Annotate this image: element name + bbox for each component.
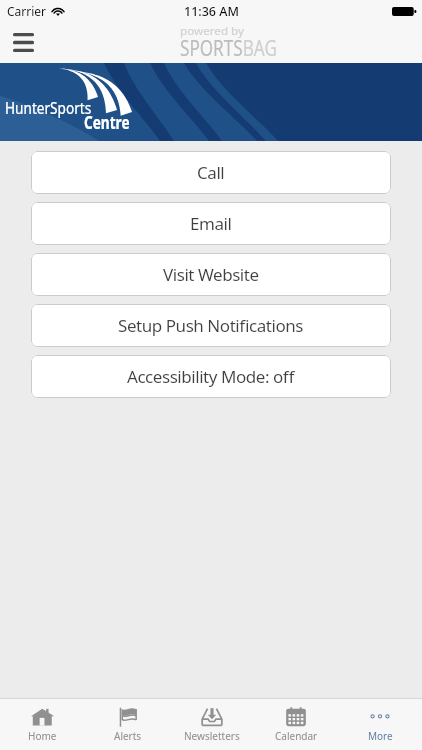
button[interactable]: Home bbox=[0, 699, 85, 750]
staticText: 11:36 AM bbox=[184, 3, 239, 20]
button[interactable]: Alerts bbox=[85, 699, 170, 750]
staticText: HunterSports bbox=[5, 96, 91, 119]
staticText: Alerts bbox=[114, 729, 142, 743]
staticText: Home bbox=[28, 729, 57, 743]
staticText: Email bbox=[190, 212, 232, 235]
staticText: Setup Push Notifications bbox=[118, 314, 304, 337]
staticText: Call bbox=[197, 161, 225, 184]
button[interactable]: Calendar bbox=[254, 699, 338, 750]
button[interactable]: Setup Push Notifications bbox=[31, 304, 391, 347]
button[interactable]: Newsletters bbox=[170, 699, 254, 750]
button[interactable]: Visit Website bbox=[31, 253, 391, 296]
staticText: Accessibility Mode: off bbox=[127, 365, 295, 388]
staticText: More bbox=[368, 729, 393, 743]
button[interactable]: More bbox=[338, 699, 422, 750]
staticText: Calendar bbox=[275, 729, 318, 743]
staticText: Centre bbox=[84, 111, 130, 134]
button[interactable]: Email bbox=[31, 202, 391, 245]
staticText: Carrier bbox=[7, 3, 47, 19]
button[interactable]: Call bbox=[31, 151, 391, 194]
staticText: Newsletters bbox=[184, 729, 240, 743]
staticText: BAG bbox=[243, 33, 277, 60]
button[interactable]: Accessibility Mode: off bbox=[31, 355, 391, 398]
staticText: powered by bbox=[180, 23, 245, 38]
button[interactable]: Menu bbox=[0, 22, 46, 63]
staticText: Visit Website bbox=[163, 263, 259, 286]
staticText: SPORTS bbox=[180, 33, 243, 60]
